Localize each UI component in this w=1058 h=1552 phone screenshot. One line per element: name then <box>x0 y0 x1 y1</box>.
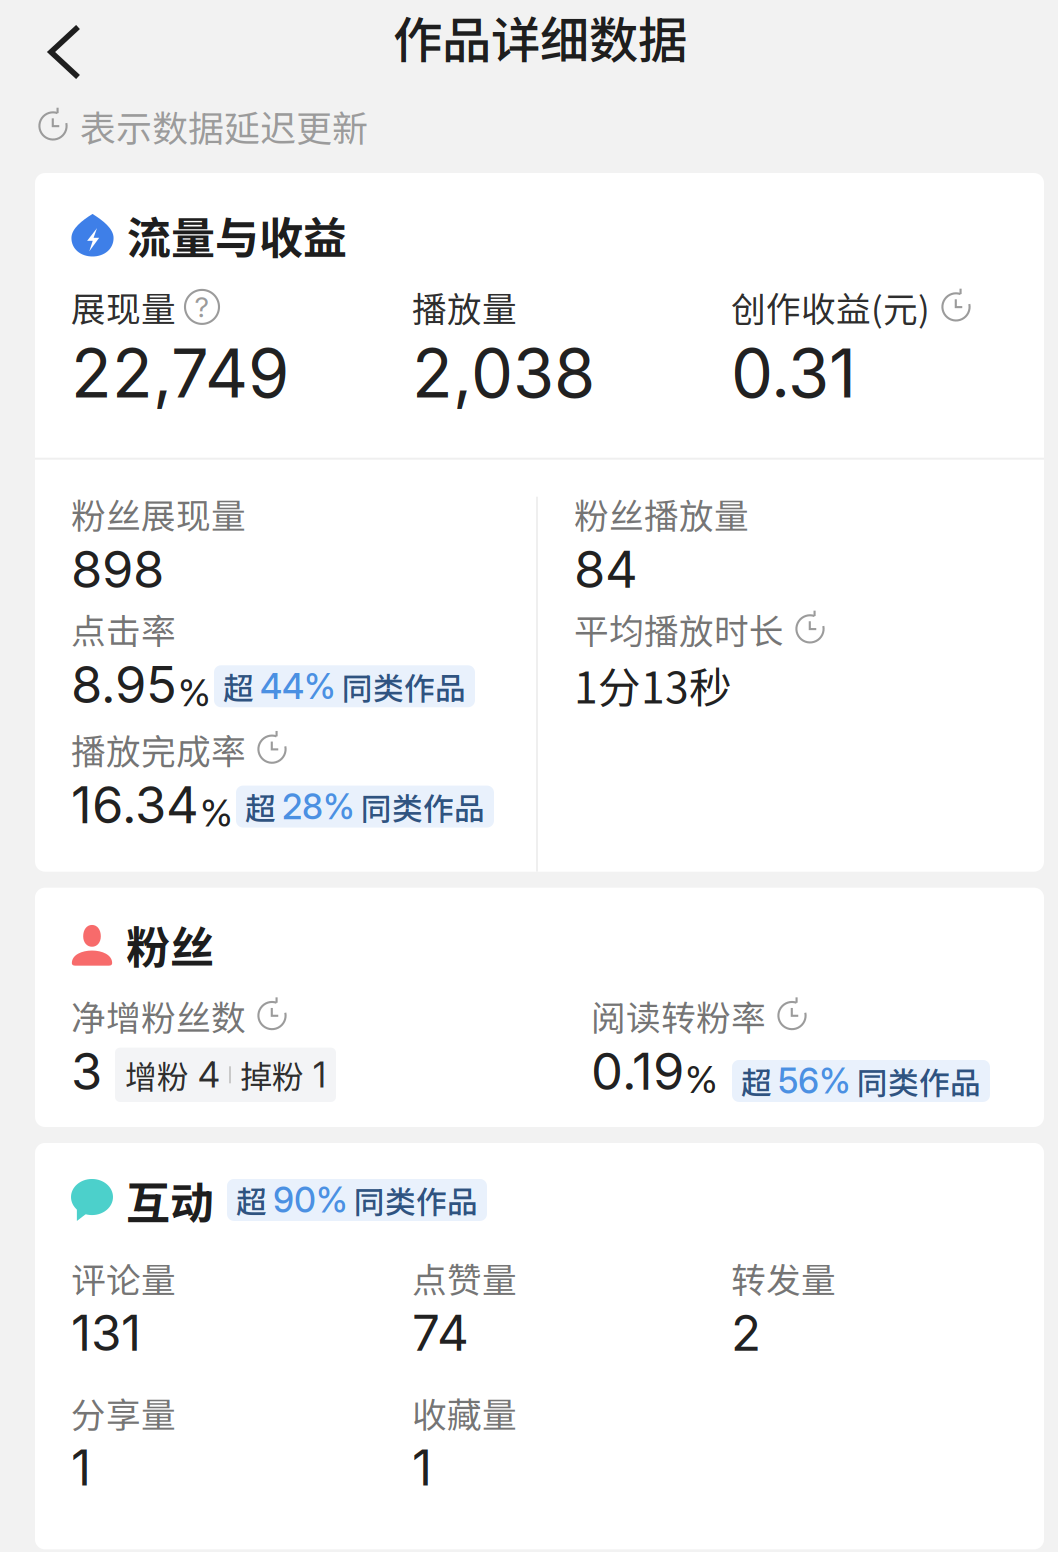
staticText: 90% <box>273 1179 348 1221</box>
staticText: 超 <box>245 784 276 829</box>
staticText: 同类作品 <box>342 664 466 708</box>
staticText: 超 <box>741 1059 772 1103</box>
staticText: 播放量 <box>412 282 517 332</box>
staticText: 增粉 <box>125 1052 189 1098</box>
staticText: 1 <box>313 1054 326 1096</box>
staticText: 131 <box>71 1303 141 1363</box>
staticText: 展现量 <box>71 282 176 332</box>
staticText: 同类作品 <box>354 1178 478 1222</box>
staticText: 分享量 <box>71 1387 176 1438</box>
staticText: 净增粉丝数 <box>71 990 246 1041</box>
staticText: 粉丝展现量 <box>71 488 246 539</box>
staticText: 4 <box>198 1054 220 1096</box>
staticText: 点赞量 <box>412 1253 517 1303</box>
staticText: 56% <box>778 1060 851 1102</box>
staticText: 同类作品 <box>857 1059 981 1103</box>
staticText: 评论量 <box>71 1253 176 1303</box>
staticText: 流量与收益 <box>127 203 347 267</box>
staticText: % <box>178 670 211 715</box>
staticText: 1 <box>71 1438 91 1497</box>
staticText: 超 <box>223 664 254 708</box>
staticText: 44% <box>260 665 336 707</box>
staticText: 互动 <box>126 1168 214 1232</box>
staticText: 1分13秒 <box>574 654 732 716</box>
staticText: 创作收益(元) <box>731 282 930 332</box>
staticText: ? <box>194 290 209 324</box>
staticText: 28% <box>282 786 355 827</box>
staticText: 粉丝播放量 <box>574 488 749 539</box>
staticText: 2,038 <box>412 333 595 414</box>
staticText: 点击率 <box>71 604 176 654</box>
staticText: 收藏量 <box>412 1387 517 1438</box>
staticText: 22,749 <box>71 333 289 414</box>
staticText: 0.19 <box>591 1041 684 1102</box>
staticText: 16.34 <box>71 774 199 836</box>
button[interactable]: 返回 <box>0 14 81 90</box>
staticText: 74 <box>412 1303 469 1363</box>
staticText: % <box>200 790 233 836</box>
staticText: 8.95 <box>71 654 177 715</box>
staticText: 898 <box>71 539 164 600</box>
staticText: 表示数据延迟更新 <box>80 100 368 152</box>
staticText: 转发量 <box>731 1253 836 1303</box>
staticText: 3 <box>71 1041 102 1102</box>
staticText: 0.31 <box>731 333 856 414</box>
staticText: 作品详细数据 <box>393 1 687 72</box>
staticText: 粉丝 <box>126 913 214 976</box>
staticText: 1 <box>412 1438 432 1497</box>
staticText: 阅读转粉率 <box>591 990 766 1041</box>
staticText: 2 <box>731 1303 761 1363</box>
staticText: 平均播放时长 <box>574 604 784 654</box>
staticText: 同类作品 <box>361 784 485 829</box>
staticText: 掉粉 <box>240 1052 304 1098</box>
staticText: 84 <box>574 539 638 600</box>
staticText: 播放完成率 <box>71 724 246 774</box>
staticText: % <box>685 1057 718 1102</box>
staticText: 超 <box>236 1178 267 1222</box>
